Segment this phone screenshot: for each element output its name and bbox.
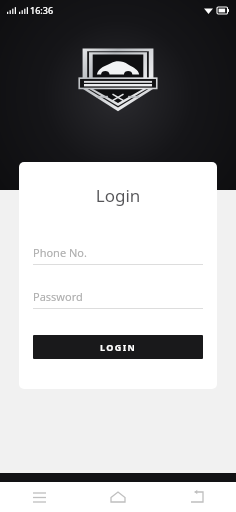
button[interactable]: Phone No.	[33, 245, 203, 265]
staticText: Password	[33, 289, 83, 304]
button[interactable]: Password	[33, 289, 203, 309]
button[interactable]: Back	[157, 482, 236, 512]
staticText: Login	[19, 184, 217, 207]
button[interactable]: Recents	[0, 482, 78, 512]
staticText: 16:36	[30, 4, 54, 16]
staticText: LOGIN	[100, 341, 137, 353]
button[interactable]: LOGIN	[33, 335, 203, 359]
staticText: Phone No.	[33, 245, 87, 260]
button[interactable]: Home	[78, 482, 157, 512]
